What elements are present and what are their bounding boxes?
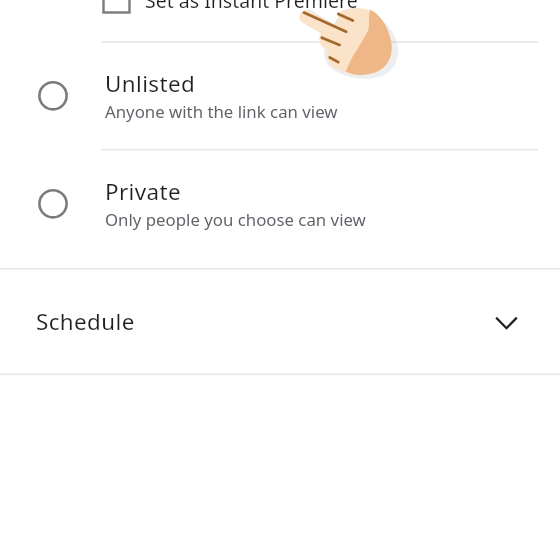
staticText: Schedule [36, 306, 135, 337]
staticText: Unlisted [105, 68, 196, 99]
staticText: Only people you choose can view [105, 208, 366, 231]
button[interactable]: Unlisted [0, 42, 560, 150]
button[interactable]: Set as Instant Premiere [0, 0, 560, 42]
other: Expand schedule [492, 269, 521, 375]
button[interactable]: Schedule [0, 269, 560, 375]
button[interactable]: Private [0, 150, 560, 258]
staticText: Anyone with the link can view [105, 100, 338, 123]
staticText: Private [105, 176, 182, 207]
staticText: Set as Instant Premiere [145, 0, 358, 14]
